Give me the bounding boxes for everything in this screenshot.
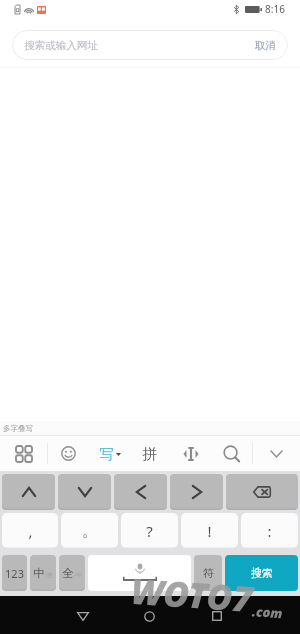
button[interactable]: 。 [61,513,118,549]
button[interactable]: Emoji [48,436,88,471]
button[interactable]: Cursor down [58,474,111,510]
staticText: .com [251,602,284,622]
button[interactable]: Hide keyboard [253,436,300,471]
staticText: 8:16 [265,2,285,16]
button[interactable]: Cursor up [2,474,55,510]
button[interactable]: 拼 [129,436,170,471]
staticText: /英 [45,571,53,579]
button[interactable]: : [241,513,298,549]
button[interactable]: Backspace [226,474,298,510]
staticText: 123 [5,566,24,581]
button[interactable]: 取消 [243,30,288,60]
staticText: 搜索 [251,566,273,580]
staticText: 多字叠写 [3,424,33,433]
staticText: ! [207,521,212,541]
button[interactable]: 搜索 [225,555,298,591]
staticText: , [28,521,33,541]
button[interactable]: Home [116,596,183,634]
button[interactable]: Chinese English [30,555,56,591]
button[interactable]: Move cursor [170,436,211,471]
button[interactable]: Cursor left [114,474,167,510]
button[interactable]: Search [211,436,252,471]
staticText: : [267,521,272,541]
button[interactable]: Keyboard layouts [0,436,47,471]
button[interactable]: ? [121,513,178,549]
staticText: WOTO7 [129,567,255,623]
button[interactable]: 写 [88,436,129,471]
staticText: ? [146,521,153,541]
button[interactable]: , [2,513,58,549]
button[interactable]: Numbers [2,555,27,591]
button[interactable]: Cursor right [170,474,223,510]
button[interactable]: Full width [59,555,85,591]
staticText: 写 [99,445,114,463]
button[interactable]: Back [50,596,116,634]
staticText: 搜索或输入网址 [24,39,98,52]
button[interactable]: Symbols [194,555,222,591]
staticText: 中 [33,566,45,580]
button[interactable]: Recents [183,596,250,634]
staticText: 。 [82,522,97,541]
staticText: 取消 [255,39,276,52]
button[interactable]: ! [181,513,238,549]
staticText: /半 [74,571,82,579]
staticText: 全 [62,566,74,580]
staticText: 拼 [142,445,157,463]
button[interactable]: Voice input [88,555,191,591]
staticText: 符 [203,566,214,580]
